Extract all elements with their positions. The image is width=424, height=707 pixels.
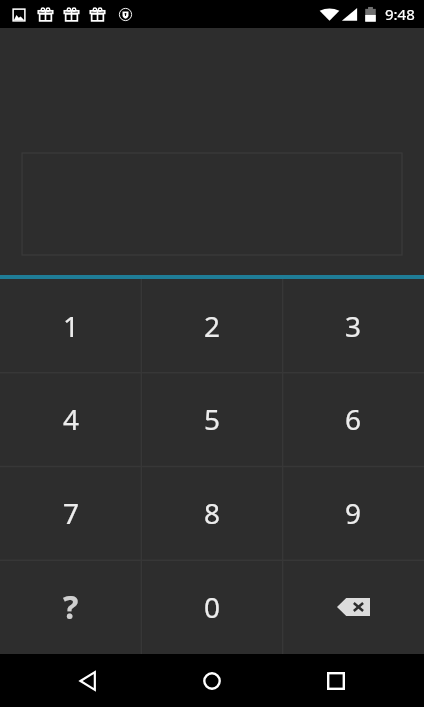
button[interactable]: Recent apps [274, 654, 398, 707]
button[interactable]: 9 [283, 466, 424, 560]
button[interactable]: 2 [142, 279, 283, 372]
button[interactable]: 8 [142, 466, 283, 560]
button[interactable]: 4 [0, 372, 142, 466]
staticText: 3 [345, 307, 362, 345]
button[interactable]: Back [26, 654, 150, 707]
staticText: 6 [345, 400, 362, 438]
staticText: 9:48 [385, 4, 415, 24]
button[interactable]: Backspace [283, 560, 424, 654]
staticText: 7 [63, 494, 80, 532]
staticText: 5 [204, 400, 221, 438]
staticText: 9 [345, 494, 362, 532]
button[interactable]: 5 [142, 372, 283, 466]
staticText: 0 [204, 588, 221, 626]
button[interactable]: 3 [283, 279, 424, 372]
button[interactable]: 7 [0, 466, 142, 560]
button[interactable]: ? [0, 560, 142, 654]
staticText: 2 [204, 307, 221, 345]
staticText: 4 [63, 400, 80, 438]
button[interactable]: 6 [283, 372, 424, 466]
button[interactable]: 0 [142, 560, 283, 654]
button[interactable]: 1 [0, 279, 142, 372]
button[interactable]: Home [150, 654, 274, 707]
staticText: 1 [63, 307, 80, 345]
other: Backspace [337, 598, 370, 616]
staticText: 8 [204, 494, 221, 532]
staticText: ? [63, 585, 79, 629]
